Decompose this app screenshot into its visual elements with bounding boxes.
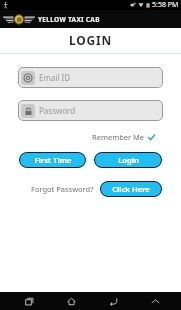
staticText: YELLOW TAXI CAB: [38, 15, 100, 24]
button[interactable]: Click Here: [100, 181, 162, 197]
button[interactable]: Email ID: [18, 67, 163, 88]
button[interactable]: Back: [104, 292, 122, 310]
staticText: 5:58 PM: [152, 0, 179, 10]
staticText: Login: [118, 155, 139, 165]
button[interactable]: Hide keyboard: [146, 292, 164, 310]
button[interactable]: Login: [94, 152, 162, 168]
staticText: Remember Me: [92, 132, 145, 142]
staticText: Email ID: [39, 72, 71, 83]
button[interactable]: Recent apps: [20, 292, 38, 310]
button[interactable]: Home: [62, 292, 80, 310]
staticText: First Time: [34, 155, 72, 165]
button[interactable]: Password: [18, 100, 163, 121]
staticText: LOGIN: [0, 32, 181, 48]
button[interactable]: Remember Me: [90, 130, 157, 144]
button[interactable]: First Time: [19, 152, 86, 168]
staticText: Forgot Password?: [31, 184, 94, 194]
staticText: Click Here: [112, 184, 150, 194]
staticText: Password: [39, 105, 76, 116]
